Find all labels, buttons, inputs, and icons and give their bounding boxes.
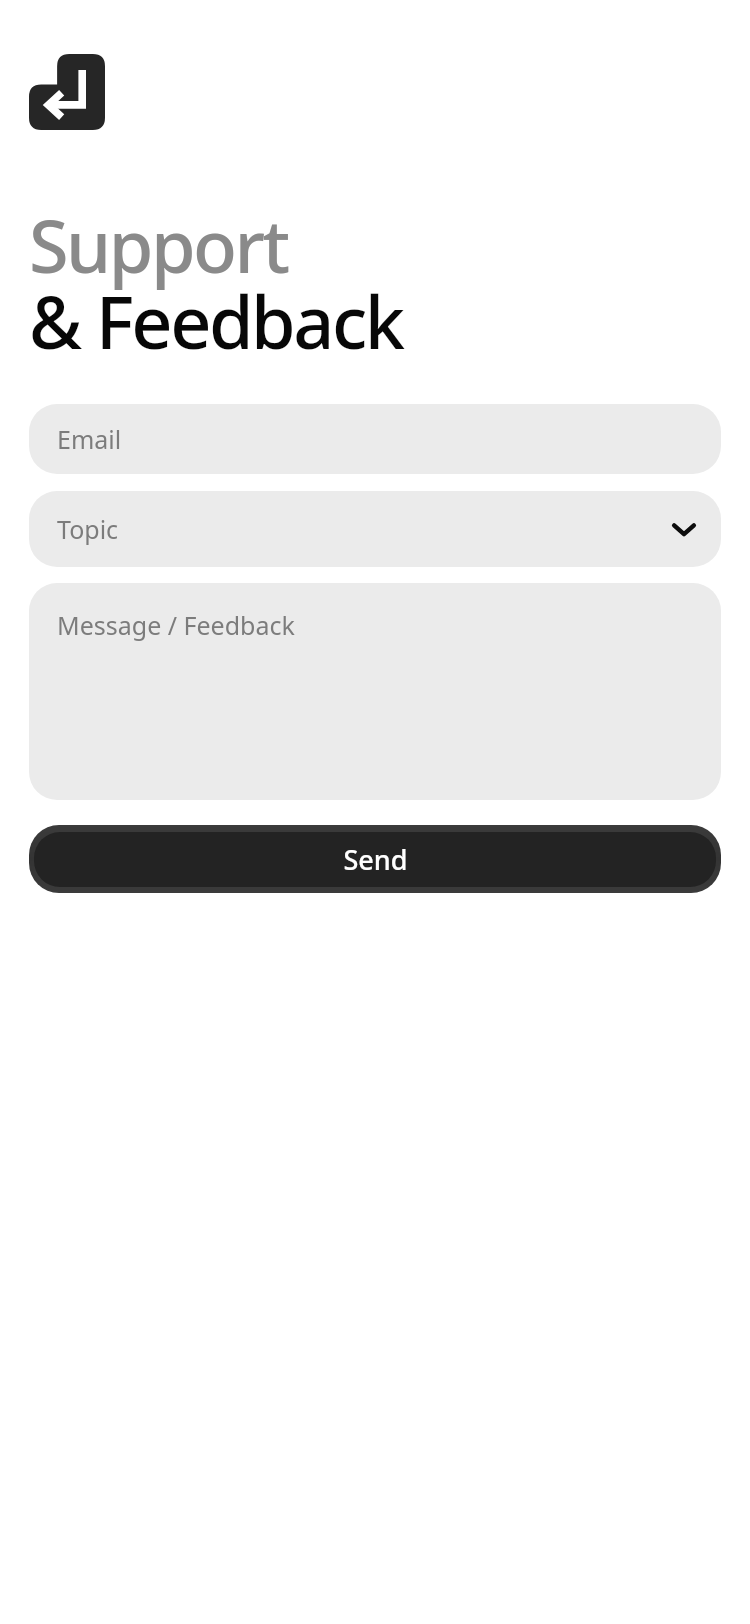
staticText: Send <box>343 841 408 878</box>
button[interactable]: Back <box>29 54 105 130</box>
button[interactable]: Message / Feedback <box>29 583 721 800</box>
staticText: Message / Feedback <box>57 608 295 642</box>
button[interactable]: Topic <box>29 491 721 567</box>
staticText: Email <box>57 422 122 456</box>
button[interactable]: Email <box>29 404 721 474</box>
staticText: Topic <box>57 512 119 546</box>
button[interactable]: Send <box>29 825 721 893</box>
staticText: Support & Feedback <box>29 196 403 370</box>
